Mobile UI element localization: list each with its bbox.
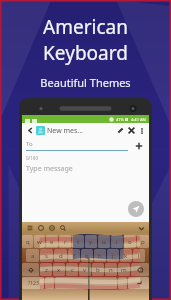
- button[interactable]: v: [79, 263, 91, 276]
- staticText: f: [73, 252, 76, 260]
- button[interactable]: [118, 277, 127, 289]
- button[interactable]: e: [46, 235, 58, 248]
- staticText: s: [45, 252, 48, 260]
- staticText: b: [96, 266, 100, 274]
- button[interactable]: w: [34, 235, 45, 248]
- button[interactable]: Contact avatar: [36, 126, 45, 135]
- button[interactable]: Close: [126, 125, 137, 136]
- button[interactable]: s: [40, 249, 53, 262]
- staticText: n: [109, 266, 113, 274]
- button[interactable]: Emoji: [36, 223, 45, 232]
- staticText: 0/160: [26, 155, 38, 161]
- staticText: k: [124, 252, 128, 260]
- button[interactable]: l: [133, 249, 145, 262]
- button[interactable]: m: [118, 263, 130, 276]
- staticText: l: [138, 252, 140, 260]
- button[interactable]: Search: [58, 223, 67, 232]
- staticText: c: [71, 266, 74, 274]
- staticText: Type message: [26, 164, 73, 174]
- button[interactable]: b: [92, 263, 104, 276]
- staticText: z: [45, 266, 48, 274]
- staticText: d: [59, 252, 63, 260]
- staticText: q: [26, 238, 30, 246]
- button[interactable]: g: [81, 249, 93, 262]
- button[interactable]: t: [72, 235, 84, 248]
- staticText: m: [121, 266, 127, 274]
- button[interactable]: [45, 277, 54, 289]
- button[interactable]: Space: [55, 277, 117, 289]
- button[interactable]: Hide keyboard: [136, 223, 146, 233]
- staticText: To: [26, 140, 33, 148]
- button[interactable]: ?123: [22, 277, 44, 289]
- staticText: x: [57, 266, 61, 274]
- staticText: w: [37, 238, 42, 246]
- button[interactable]: p: [137, 235, 149, 248]
- staticText: ?123: [28, 280, 39, 287]
- button[interactable]: y: [85, 235, 97, 248]
- staticText: e: [50, 238, 54, 246]
- button[interactable]: z: [40, 263, 52, 276]
- button[interactable]: k: [120, 249, 132, 262]
- button[interactable]: o: [124, 235, 136, 248]
- staticText: i: [116, 238, 118, 246]
- button[interactable]: u: [98, 235, 110, 248]
- button[interactable]: a: [26, 249, 39, 262]
- button[interactable]: f: [68, 249, 80, 262]
- button[interactable]: More options: [137, 126, 146, 135]
- button[interactable]: x: [53, 263, 65, 276]
- button[interactable]: Back: [25, 125, 36, 136]
- button[interactable]: c: [66, 263, 78, 276]
- button[interactable]: Attach: [115, 125, 126, 136]
- button[interactable]: Shift: [22, 263, 39, 276]
- button[interactable]: q: [22, 235, 33, 248]
- button[interactable]: Send: [128, 201, 144, 217]
- button[interactable]: Enter: [128, 277, 149, 289]
- button[interactable]: h: [94, 249, 106, 262]
- button[interactable]: r: [59, 235, 71, 248]
- staticText: v: [83, 266, 87, 274]
- button[interactable]: Stickers: [47, 223, 56, 232]
- staticText: r: [64, 238, 67, 246]
- button[interactable]: Add recipient: [133, 140, 145, 152]
- staticText: American Keyboard: [0, 14, 171, 66]
- staticText: p: [141, 238, 145, 246]
- button[interactable]: j: [107, 249, 119, 262]
- staticText: y: [89, 238, 93, 246]
- staticText: h: [98, 252, 102, 260]
- button[interactable]: Menu: [25, 223, 34, 232]
- button[interactable]: Backspace: [131, 263, 149, 276]
- staticText: New mes...: [47, 126, 83, 136]
- staticText: Beautiful Themes: [40, 75, 131, 90]
- staticText: u: [102, 238, 106, 246]
- staticText: 4:41 AM: [131, 117, 147, 122]
- staticText: o: [128, 238, 132, 246]
- staticText: 41%: [116, 117, 124, 122]
- button[interactable]: d: [54, 249, 67, 262]
- staticText: t: [77, 238, 80, 246]
- button[interactable]: n: [105, 263, 117, 276]
- staticText: j: [112, 252, 114, 260]
- staticText: a: [31, 252, 35, 260]
- button[interactable]: i: [111, 235, 123, 248]
- staticText: g: [85, 252, 89, 260]
